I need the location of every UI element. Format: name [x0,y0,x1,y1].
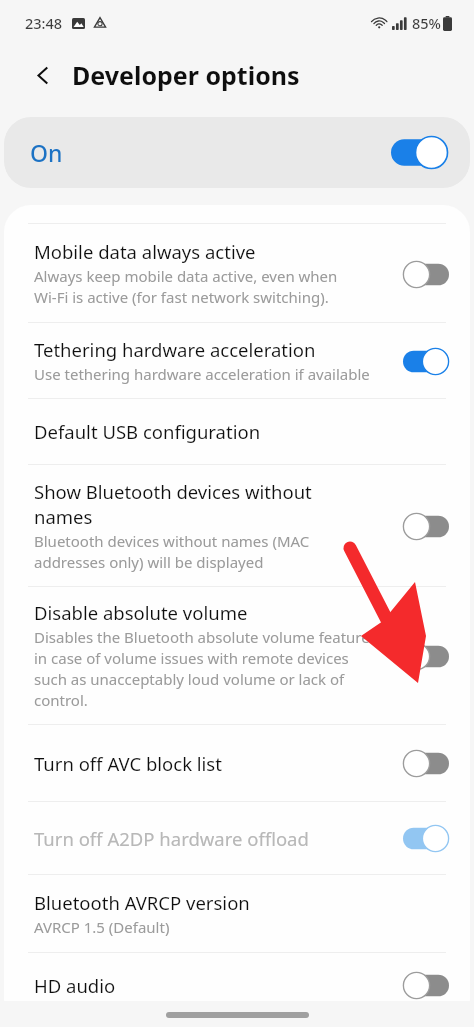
button[interactable]: Navigate up [26,58,60,92]
staticText: Developer options [72,58,300,92]
button[interactable]: Turn off AVC block list [4,725,470,801]
button[interactable]: Bluetooth AVRCP version [4,875,470,952]
staticText: Disable absolute volume [34,600,248,625]
staticText: 23:48 [25,13,63,33]
button[interactable]: Mobile data always active [4,224,470,322]
staticText: AVRCP 1.5 (Default) [34,917,170,937]
button[interactable]: Default USB configuration [4,399,470,464]
staticText: Mobile data always active [34,239,256,264]
button[interactable]: HD audio [4,953,470,1027]
staticText: Always keep mobile data active, even whe… [34,266,338,308]
staticText: Disables the Bluetooth absolute volume f… [34,627,370,711]
staticText: Turn off AVC block list [34,751,222,776]
staticText: Bluetooth devices without names (MAC add… [34,531,310,573]
button[interactable]: On [4,117,470,188]
staticText: Bluetooth AVRCP version [34,890,250,915]
button[interactable]: Disable absolute volume [4,587,470,724]
button[interactable]: Turn off A2DP hardware offload [4,802,470,874]
button[interactable]: Tethering hardware acceleration [4,323,470,398]
staticText: Use tethering hardware acceleration if a… [34,364,370,384]
staticText: On [30,137,63,168]
staticText: HD audio [34,973,116,998]
staticText: Turn off A2DP hardware offload [34,826,309,851]
staticText: Tethering hardware acceleration [34,337,316,362]
staticText: Show Bluetooth devices without names [34,479,312,529]
staticText: Default USB configuration [34,419,261,444]
button[interactable]: Show Bluetooth devices without names [4,465,470,586]
staticText: 85% [412,13,441,33]
